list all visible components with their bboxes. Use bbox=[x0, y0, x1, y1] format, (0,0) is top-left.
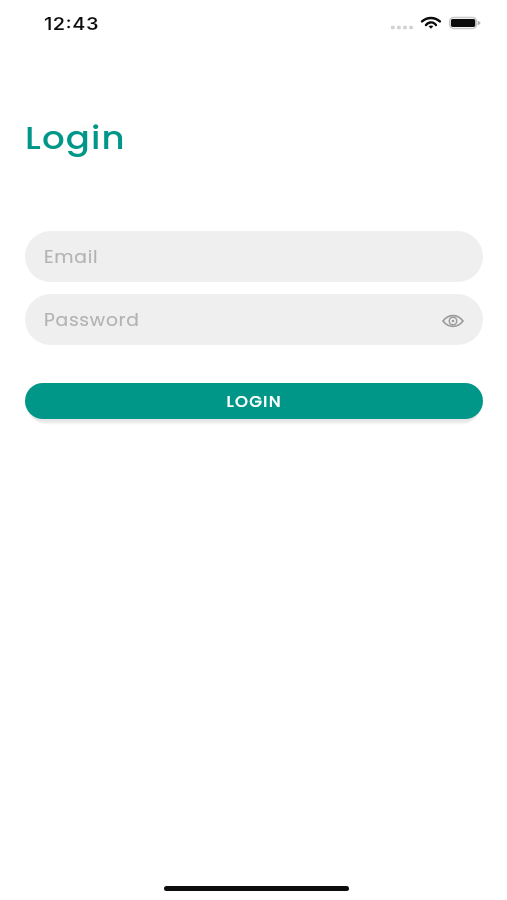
staticText: Password bbox=[44, 308, 140, 332]
button[interactable]: Show password bbox=[439, 307, 467, 335]
button[interactable]: Email bbox=[25, 231, 483, 282]
button[interactable]: Password bbox=[25, 294, 483, 345]
staticText: Login bbox=[25, 116, 127, 160]
staticText: 12:43 bbox=[44, 14, 100, 35]
staticText: Email bbox=[44, 245, 99, 269]
button[interactable]: LOGIN bbox=[25, 383, 483, 419]
staticText: LOGIN bbox=[226, 391, 282, 412]
